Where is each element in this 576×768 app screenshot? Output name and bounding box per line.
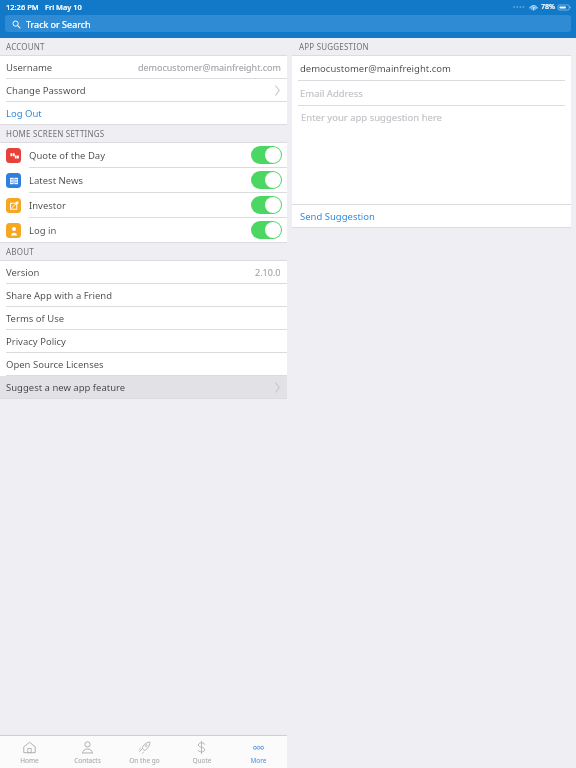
staticText: 78% <box>541 2 555 12</box>
staticText: Suggest a new app feature <box>6 381 126 394</box>
button[interactable]: Version <box>0 261 287 284</box>
button[interactable]: Toggle on <box>251 146 282 164</box>
button[interactable]: Home <box>0 736 58 768</box>
button[interactable]: On the go <box>116 736 173 768</box>
button[interactable]: Investor <box>0 193 287 218</box>
staticText: Version <box>6 266 40 279</box>
staticText: Terms of Use <box>6 312 65 325</box>
staticText: democustomer@mainfreight.com <box>138 61 281 73</box>
button[interactable]: Privacy Policy <box>0 330 287 353</box>
staticText: Latest News <box>29 174 83 187</box>
staticText: Change Password <box>6 84 86 97</box>
button[interactable]: Open Source Licenses <box>0 353 287 376</box>
staticText: On the go <box>129 756 160 765</box>
button[interactable]: Log in <box>0 218 287 242</box>
staticText: democustomer@mainfreight.com <box>300 62 451 75</box>
staticText: More <box>250 756 267 765</box>
button[interactable]: Log Out <box>0 102 287 124</box>
button[interactable]: Contacts <box>58 736 116 768</box>
button[interactable]: More <box>230 736 287 768</box>
staticText: Share App with a Friend <box>6 289 113 302</box>
button[interactable]: Email Address <box>292 81 571 105</box>
staticText: 2.10.0 <box>255 266 281 278</box>
staticText: Username <box>6 61 53 74</box>
button[interactable]: Toggle on <box>251 171 282 189</box>
staticText: Contacts <box>74 756 101 765</box>
staticText: Investor <box>29 199 66 212</box>
staticText: HOME SCREEN SETTINGS <box>6 128 105 139</box>
staticText: ACCOUNT <box>6 41 45 52</box>
staticText: Enter your app suggestion here <box>301 111 442 124</box>
staticText: Privacy Policy <box>6 335 66 348</box>
button[interactable]: Username <box>0 56 287 79</box>
staticText: Log Out <box>6 107 42 120</box>
staticText: Open Source Licenses <box>6 358 104 371</box>
staticText: Send Suggestion <box>300 210 375 223</box>
staticText: Track or Search <box>26 18 91 30</box>
button[interactable]: Toggle on <box>251 221 282 239</box>
staticText: ABOUT <box>6 246 34 257</box>
button[interactable]: Quote of the Day <box>0 143 287 168</box>
button[interactable]: Track or Search <box>5 15 571 32</box>
button[interactable]: Enter your app suggestion here <box>292 106 571 204</box>
staticText: Quote of the Day <box>29 149 106 162</box>
button[interactable]: democustomer@mainfreight.com <box>292 56 571 80</box>
button[interactable]: Quote <box>173 736 230 768</box>
staticText: Email Address <box>300 87 363 100</box>
button[interactable]: Latest News <box>0 168 287 193</box>
button[interactable]: Toggle on <box>251 196 282 214</box>
staticText: 12:26 PM <box>6 2 39 12</box>
button[interactable]: Share App with a Friend <box>0 284 287 307</box>
staticText: Quote <box>192 756 212 765</box>
button[interactable]: Terms of Use <box>0 307 287 330</box>
button[interactable]: Send Suggestion <box>292 205 571 227</box>
button[interactable]: Change Password <box>0 79 287 102</box>
button[interactable]: Suggest a new app feature <box>0 376 287 398</box>
staticText: Log in <box>29 224 57 237</box>
staticText: Home <box>20 756 39 765</box>
staticText: Fri May 10 <box>45 2 82 12</box>
staticText: APP SUGGESTION <box>299 41 369 52</box>
